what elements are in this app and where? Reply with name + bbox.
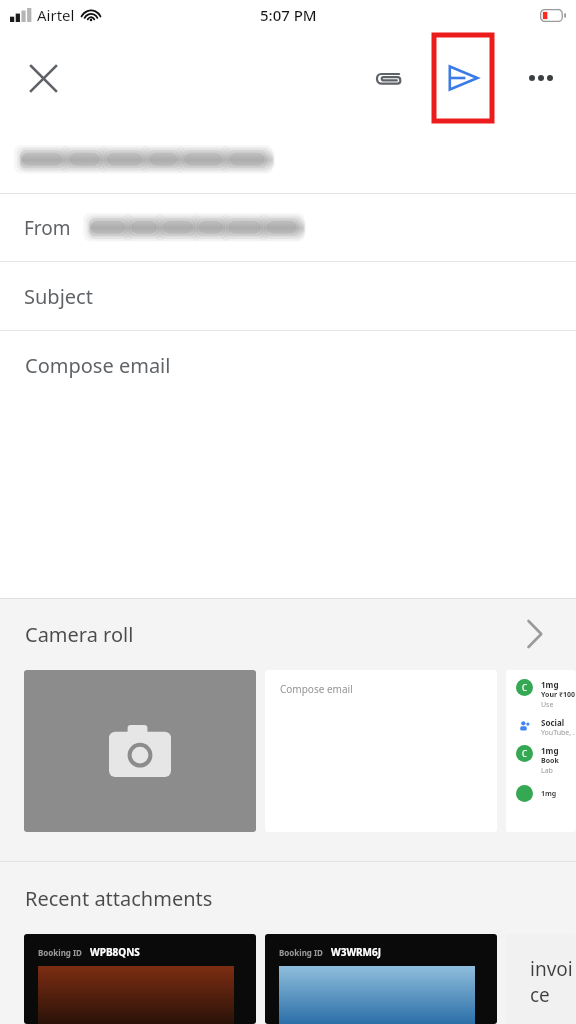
button[interactable]: Compose email [0, 331, 576, 399]
staticText: 1mg [541, 745, 559, 756]
staticText: WPB8QNS [90, 945, 140, 959]
staticText: Compose email [280, 682, 353, 696]
other: Open camera roll [512, 612, 556, 656]
staticText: Your ₹100 ... [541, 690, 576, 700]
button[interactable]: Compose email [265, 670, 497, 832]
staticText: YouTube, ... [541, 728, 576, 738]
button[interactable]: From [0, 194, 576, 261]
staticText: Lab tests ... [541, 766, 576, 776]
staticText: Compose email [25, 352, 171, 379]
button[interactable]: invoice [506, 934, 576, 1024]
staticText: Camera roll [25, 621, 134, 648]
staticText: Subject [24, 283, 93, 310]
button[interactable]: C [506, 670, 576, 832]
staticText: 1mg [541, 789, 557, 799]
button[interactable]: Send [434, 35, 492, 121]
button[interactable]: Close [16, 51, 70, 105]
staticText: C [522, 748, 528, 759]
button[interactable]: Take photo [24, 670, 256, 832]
staticText: Social [541, 717, 565, 728]
button[interactable]: Booking ID [265, 934, 497, 1024]
staticText: Airtel [37, 5, 75, 25]
button[interactable]: Camera roll [0, 599, 576, 669]
staticText: W3WRM6J [331, 945, 382, 959]
button[interactable]: Recent attachments [0, 862, 576, 934]
staticText: Booking ID [279, 947, 323, 958]
staticText: Recent attachments [25, 885, 213, 912]
button[interactable]: Attach file [362, 51, 416, 105]
staticText: invoice [530, 956, 576, 1008]
staticText: 1mg [541, 679, 559, 690]
button[interactable]: Booking ID [24, 934, 256, 1024]
staticText: Booking ID [38, 947, 82, 958]
staticText: C [522, 682, 528, 693]
staticText: Book Lab ... [541, 756, 576, 766]
button[interactable]: Subject [0, 262, 576, 330]
button[interactable] [0, 126, 576, 193]
staticText: From [24, 215, 71, 241]
staticText: 5:07 PM [260, 5, 317, 25]
button[interactable]: More options [514, 51, 568, 105]
staticText: Use Code ... [541, 700, 576, 710]
